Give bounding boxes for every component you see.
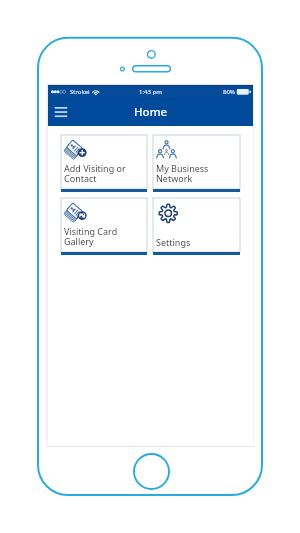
button[interactable]: Add Visiting or Contact [61,135,147,192]
staticText: My Business Network [156,162,209,185]
staticText: Settings [156,236,191,248]
staticText: Strokei [70,88,90,96]
staticText: Home [134,104,168,120]
staticText: Add Visiting or Contact [64,162,126,185]
button[interactable]: Visiting Card Gallery [61,198,147,255]
button[interactable]: My Business Network [153,135,240,192]
staticText: Visiting Card Gallery [64,225,118,248]
button[interactable]: Settings [153,198,240,255]
button[interactable]: Open navigation menu [50,101,72,123]
staticText: 1:43 pm [139,88,162,96]
staticText: 80% [223,88,235,96]
